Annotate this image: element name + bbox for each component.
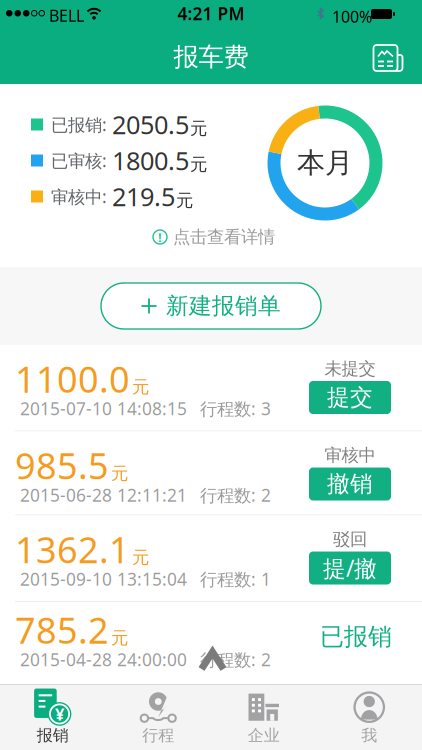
staticText: 已报销: — [51, 113, 107, 136]
staticText: 2015-09-10 13:15:04 — [20, 567, 187, 590]
staticText: 行程数: 2 — [200, 483, 271, 506]
staticText: 企业 — [248, 726, 280, 745]
staticText: 审核中 — [324, 444, 375, 466]
staticText: 提交 — [327, 384, 373, 411]
staticText: 219.5 — [112, 180, 175, 213]
button[interactable]: ! — [153, 226, 275, 248]
staticText: ¥ — [55, 703, 63, 723]
staticText: 元 — [190, 154, 207, 175]
staticText: 行程数: 1 — [200, 567, 271, 590]
staticText: 985.5 — [15, 441, 109, 489]
staticText: 已报销 — [320, 622, 392, 651]
staticText: 驳回 — [333, 528, 367, 550]
button[interactable]: 报销单列表 — [366, 38, 410, 78]
staticText: 元 — [111, 627, 128, 649]
button[interactable]: 行程 — [105, 687, 211, 749]
staticText: 2015-06-28 12:11:21 — [20, 483, 187, 506]
button[interactable]: 提交 — [309, 381, 391, 414]
staticText: 报车费 — [173, 41, 248, 72]
staticText: 本月 — [297, 146, 353, 180]
staticText: 未提交 — [324, 358, 375, 379]
staticText: 元 — [132, 376, 149, 398]
staticText: 2015-07-10 14:08:15 — [20, 397, 187, 420]
staticText: 元 — [132, 547, 149, 568]
staticText: 4:21 PM — [177, 2, 244, 25]
staticText: 已审核: — [51, 149, 107, 172]
staticText: 1800.5 — [112, 144, 189, 177]
button[interactable]: 我 — [316, 687, 422, 749]
staticText: BELL — [49, 5, 84, 26]
staticText: 撤销 — [327, 470, 373, 498]
button[interactable]: 企业 — [211, 687, 316, 749]
button[interactable]: 1362.1 — [0, 515, 422, 601]
staticText: 点击查看详情 — [173, 226, 275, 248]
button[interactable]: 785.2 — [0, 602, 422, 684]
staticText: 新建报销单 — [166, 292, 281, 320]
staticText: 审核中: — [51, 185, 107, 208]
staticText: 行程数: 2 — [200, 648, 271, 671]
button[interactable]: 收起 — [198, 648, 227, 673]
staticText: ! — [158, 228, 162, 246]
staticText: 1100.0 — [15, 355, 130, 403]
staticText: 元 — [176, 190, 193, 211]
button[interactable]: 新建报销单 — [101, 283, 321, 329]
staticText: 2050.5 — [112, 108, 189, 141]
button[interactable]: 撤销 — [309, 467, 391, 500]
staticText: 报销 — [37, 726, 69, 745]
staticText: 提/撤 — [323, 553, 377, 583]
staticText: 我 — [361, 726, 377, 745]
button[interactable]: ¥ — [0, 687, 105, 749]
button[interactable]: 1100.0 — [0, 345, 422, 430]
staticText: 行程 — [142, 726, 174, 745]
button[interactable]: 985.5 — [0, 431, 422, 514]
staticText: 2015-04-28 24:00:00 — [20, 648, 187, 671]
staticText: 行程数: 3 — [200, 397, 271, 420]
staticText: 元 — [111, 463, 128, 484]
staticText: 1362.1 — [15, 525, 130, 573]
button[interactable]: 提/撤 — [309, 551, 391, 584]
staticText: 元 — [190, 118, 207, 139]
staticText: 100% — [332, 6, 372, 27]
staticText: 785.2 — [15, 606, 109, 654]
